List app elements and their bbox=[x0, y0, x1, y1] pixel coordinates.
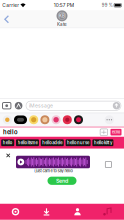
button[interactable]: helloitsme bbox=[16, 139, 39, 146]
button[interactable]: Settings bbox=[0, 204, 31, 220]
button[interactable]: Photos bbox=[3, 115, 12, 124]
button[interactable]: Stickers bbox=[52, 115, 61, 124]
button[interactable]: Music bbox=[63, 115, 72, 124]
button[interactable]: Sounds bbox=[93, 204, 124, 220]
button[interactable]: hellokitty bbox=[92, 139, 113, 146]
staticText: 99 % bbox=[102, 3, 113, 8]
button[interactable]: Apps bbox=[13, 102, 24, 109]
button[interactable]: echo bbox=[110, 129, 121, 135]
button[interactable]: hellonurse bbox=[66, 139, 91, 146]
staticText: hello bbox=[3, 129, 18, 136]
staticText: helloitsme bbox=[17, 140, 37, 145]
button[interactable]: helloadele bbox=[41, 139, 64, 146]
staticText: Send bbox=[56, 177, 68, 184]
staticText: KB bbox=[59, 13, 65, 18]
staticText: I just came to say hello bbox=[33, 168, 72, 173]
button[interactable]: Hello app bbox=[74, 115, 83, 124]
staticText: hello bbox=[3, 140, 13, 145]
button[interactable]: Animoji bbox=[40, 115, 49, 124]
staticText: Kate bbox=[57, 22, 67, 27]
button[interactable]: Emoji bbox=[29, 115, 38, 124]
button[interactable]: Profile bbox=[62, 204, 93, 220]
button[interactable]: More apps bbox=[105, 115, 114, 124]
button[interactable]: Close bbox=[5, 152, 11, 159]
button[interactable]: Back bbox=[0, 10, 14, 28]
staticText: iMessage bbox=[29, 103, 53, 109]
button[interactable]: App Store bbox=[14, 115, 27, 124]
staticText: echo bbox=[112, 130, 120, 134]
button[interactable]: Send bbox=[47, 177, 76, 185]
staticText: 10:57 PM bbox=[54, 2, 74, 8]
staticText: Carrier bbox=[2, 2, 19, 8]
staticText: hellonurse bbox=[67, 140, 89, 145]
button[interactable]: Grid bbox=[100, 129, 108, 136]
button[interactable]: Downloads bbox=[31, 204, 62, 220]
button[interactable]: Camera bbox=[0, 102, 13, 109]
staticText: hellokitty bbox=[94, 140, 112, 145]
button[interactable]: Select bbox=[104, 160, 113, 169]
staticText: helloadele bbox=[42, 140, 62, 145]
button[interactable]: hello bbox=[1, 139, 14, 146]
